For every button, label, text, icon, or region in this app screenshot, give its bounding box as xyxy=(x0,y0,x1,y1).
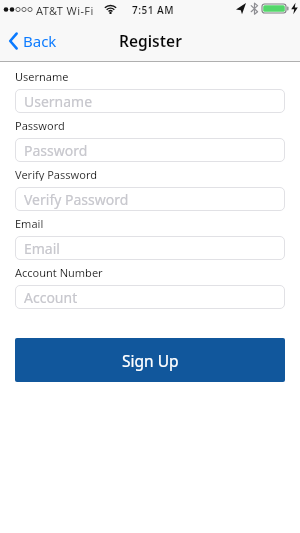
button[interactable]: Sign Up xyxy=(15,338,285,382)
staticText: Account xyxy=(24,288,78,307)
staticText: AT&T Wi-Fi xyxy=(36,3,94,18)
staticText: Username xyxy=(24,92,93,111)
staticText: Back xyxy=(23,31,57,51)
staticText: Sign Up xyxy=(122,350,179,371)
staticText: Verify Password xyxy=(15,167,97,181)
staticText: Username xyxy=(15,69,69,83)
staticText: Email xyxy=(24,239,60,258)
button[interactable]: Username xyxy=(15,89,285,113)
button[interactable]: Account xyxy=(15,285,285,309)
staticText: Account Number xyxy=(15,265,103,279)
staticText: Register xyxy=(119,30,182,51)
staticText: Password xyxy=(24,141,88,160)
button[interactable]: Back xyxy=(8,31,57,51)
staticText: Email xyxy=(15,216,44,230)
button[interactable]: Verify Password xyxy=(15,187,285,211)
staticText: 7:51 AM xyxy=(132,3,175,17)
staticText: Verify Password xyxy=(24,190,129,209)
button[interactable]: Email xyxy=(15,236,285,260)
button[interactable]: Password xyxy=(15,138,285,162)
staticText: Password xyxy=(15,118,65,132)
